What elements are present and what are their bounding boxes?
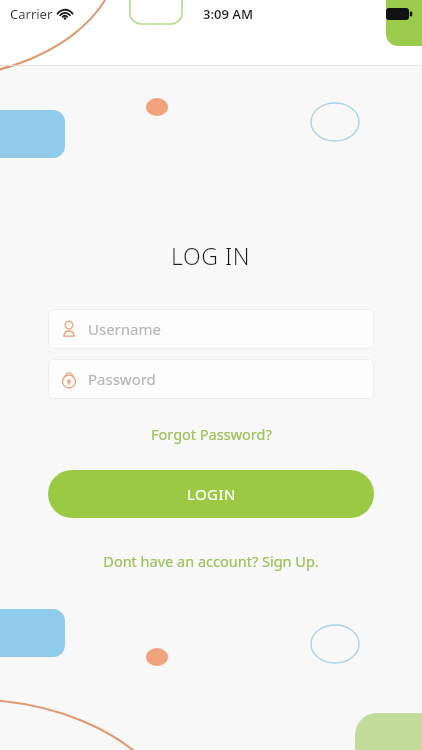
staticText: Username — [88, 319, 161, 339]
staticText: LOGIN — [187, 484, 236, 504]
staticText: Carrier — [10, 5, 53, 23]
staticText: Password — [88, 369, 156, 389]
button[interactable]: Username — [48, 309, 374, 349]
staticText: Forgot Password? — [151, 424, 272, 444]
staticText: 3:09 AM — [203, 5, 254, 23]
button[interactable]: LOGIN — [48, 470, 374, 518]
staticText: LOG IN — [171, 240, 251, 271]
button[interactable]: Forgot Password? — [145, 421, 278, 447]
staticText: Dont have an account? Sign Up. — [103, 551, 319, 571]
button[interactable]: Password — [48, 359, 374, 399]
button[interactable]: Dont have an account? Sign Up. — [97, 548, 325, 574]
